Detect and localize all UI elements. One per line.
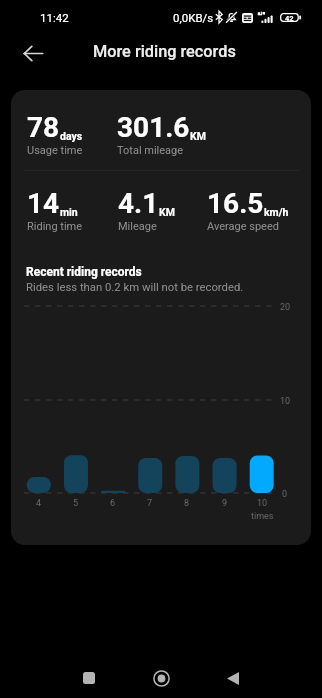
button[interactable]: Recent apps [65, 654, 113, 698]
staticText: Average speed [207, 220, 279, 233]
staticText: 0,0KB/s [173, 11, 214, 24]
staticText: KM [190, 130, 206, 142]
staticText: 10 [280, 396, 291, 407]
staticText: km/h [264, 206, 289, 218]
staticText: KM [159, 206, 175, 218]
button[interactable]: Back [13, 33, 53, 73]
staticText: 0 [282, 489, 288, 500]
button[interactable]: Home [137, 654, 185, 698]
staticText: 6 [110, 498, 116, 509]
staticText: Usage time [27, 144, 83, 157]
staticText: Total mileage [117, 144, 184, 157]
staticText: Recent riding records [26, 265, 142, 279]
staticText: min [60, 206, 78, 218]
staticText: 8 [184, 498, 190, 509]
staticText: 7 [147, 498, 153, 509]
staticText: 4.1 [118, 187, 159, 220]
staticText: 5 [73, 498, 79, 509]
staticText: Mileage [118, 220, 157, 233]
staticText: 14 [27, 187, 60, 220]
staticText: 10 [257, 498, 268, 509]
staticText: 9 [222, 498, 228, 509]
staticText: 78 [27, 111, 60, 144]
staticText: 16.5 [207, 187, 264, 220]
staticText: times [251, 511, 274, 522]
staticText: 4 [36, 498, 42, 509]
staticText: Riding time [27, 220, 83, 233]
staticText: 301.6 [117, 111, 190, 144]
staticText: 11:42 [40, 11, 69, 24]
button[interactable]: Back [209, 654, 257, 698]
staticText: 42 [285, 14, 294, 23]
staticText: 20 [280, 302, 291, 313]
staticText: Rides less than 0.2 km will not be recor… [26, 281, 244, 294]
staticText: days [60, 130, 83, 142]
staticText: More riding records [93, 42, 236, 61]
